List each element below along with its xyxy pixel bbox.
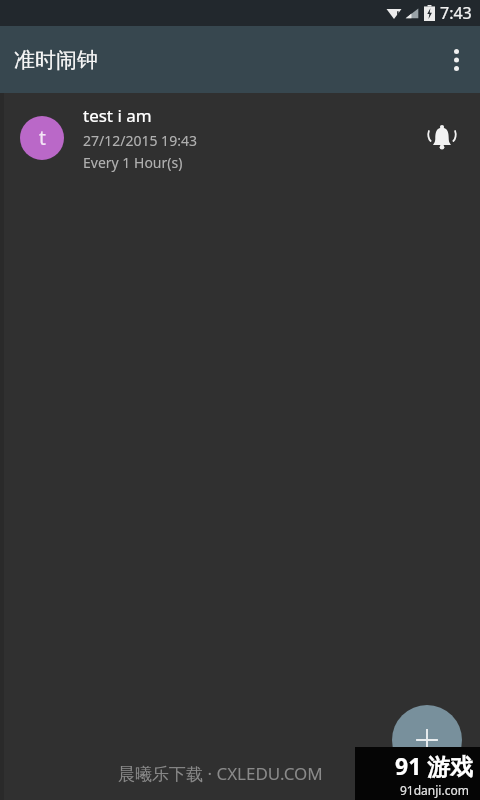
staticText: 晨曦乐下载 · CXLEDU.COM [118, 762, 323, 785]
button[interactable]: t [0, 93, 480, 183]
button[interactable]: Alarm enabled [418, 114, 466, 162]
staticText: t [39, 125, 46, 151]
staticText: 91 游戏 [395, 750, 474, 781]
staticText: test i am [83, 104, 152, 127]
staticText: 91danji.com [400, 782, 469, 798]
button[interactable]: Add alarm [392, 705, 462, 775]
staticText: 准时闹钟 [14, 47, 98, 73]
staticText: 27/12/2015 19:43 [83, 131, 197, 150]
staticText: 7:43 [440, 2, 472, 24]
staticText: Every 1 Hour(s) [83, 153, 183, 172]
button[interactable]: More options [432, 26, 480, 93]
